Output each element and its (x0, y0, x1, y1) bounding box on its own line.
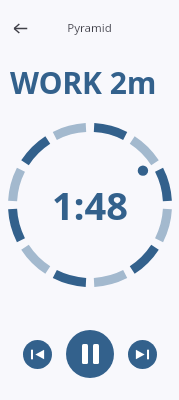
button[interactable]: Next (128, 340, 157, 369)
staticText: Pyramid (67, 20, 112, 36)
button[interactable]: Previous (23, 340, 52, 369)
staticText: 1:48 (52, 179, 128, 231)
button[interactable]: Back (6, 14, 34, 42)
staticText: WORK 2m (10, 62, 179, 103)
button[interactable]: Pause (66, 330, 114, 378)
